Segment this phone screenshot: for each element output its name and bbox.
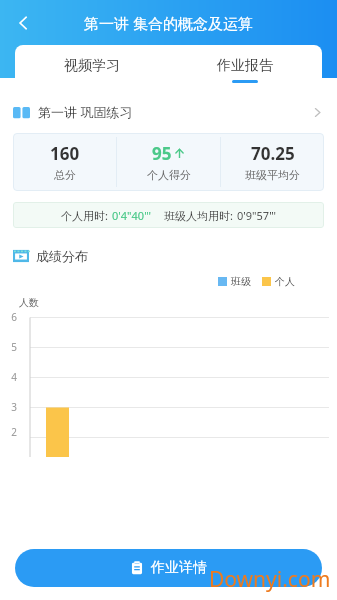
- button[interactable]: 第一讲 巩固练习: [0, 99, 337, 125]
- staticText: 5: [11, 340, 17, 354]
- button[interactable]: Back: [4, 4, 42, 42]
- staticText: 0'4"40"': [112, 208, 152, 223]
- staticText: 作业报告: [217, 57, 273, 75]
- button[interactable]: 作业详情: [15, 549, 322, 587]
- staticText: 2: [11, 425, 17, 439]
- staticText: 160: [50, 142, 80, 165]
- staticText: 70.25: [251, 142, 295, 165]
- staticText: 个人: [275, 275, 295, 288]
- button[interactable]: 作业报告: [168, 45, 322, 86]
- staticText: 班级: [231, 275, 251, 288]
- staticText: 6: [11, 310, 17, 324]
- staticText: 个人得分: [147, 168, 191, 182]
- staticText: 班级平均分: [245, 168, 300, 182]
- staticText: 成绩分布: [36, 248, 88, 264]
- staticText: 95: [152, 142, 172, 165]
- button[interactable]: 视频学习: [15, 45, 168, 86]
- staticText: Downyi.com: [209, 565, 331, 594]
- staticText: 第一讲 集合的概念及运算: [84, 13, 253, 33]
- staticText: 视频学习: [64, 57, 120, 75]
- staticText: 个人用时:: [61, 208, 108, 223]
- staticText: 总分: [54, 168, 76, 182]
- staticText: 班级人均用时:: [164, 208, 233, 223]
- staticText: 4: [11, 370, 17, 384]
- staticText: 作业详情: [151, 559, 207, 577]
- staticText: 人数: [19, 296, 39, 309]
- staticText: 0'9"57"': [237, 208, 277, 223]
- staticText: 第一讲 巩固练习: [38, 103, 133, 121]
- staticText: 3: [11, 400, 17, 414]
